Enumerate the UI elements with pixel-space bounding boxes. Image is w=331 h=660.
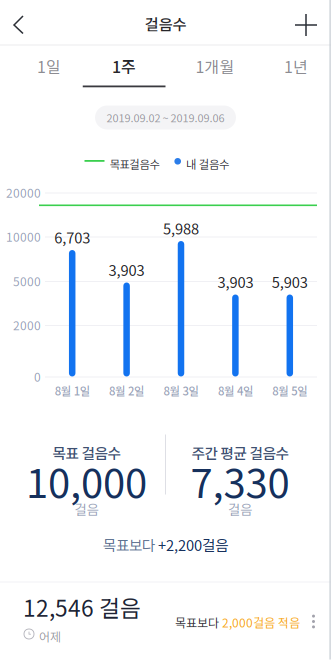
staticText: 목표걸음수	[109, 155, 159, 172]
staticText: 1년	[284, 54, 308, 78]
staticText: 8월 2일	[109, 382, 144, 399]
staticText: 7,330	[190, 451, 289, 509]
staticText: 목표보다	[103, 534, 158, 555]
staticText: 6,703	[54, 226, 90, 248]
staticText: 3,903	[217, 271, 253, 292]
staticText: 주간 평균 걸음수	[191, 442, 288, 463]
button[interactable]: 12,546 걸음	[0, 582, 331, 659]
staticText: 8월 5일	[272, 382, 307, 399]
staticText: 5,903	[272, 271, 308, 292]
button[interactable]: 1개월	[165, 44, 248, 87]
staticText: 1주	[112, 54, 136, 78]
staticText: +2,200걸음	[158, 534, 228, 555]
staticText: 목표 걸음수	[52, 442, 120, 463]
staticText: 2019.09.02 ~ 2019.09.06	[106, 110, 224, 125]
staticText: 10,000	[26, 451, 147, 509]
staticText: 5,988	[163, 217, 199, 239]
staticText: 1일	[37, 54, 61, 78]
staticText: 20000	[6, 184, 41, 201]
staticText: 1개월	[195, 54, 234, 78]
button[interactable]: 1주	[83, 44, 166, 87]
staticText: 8월 1일	[55, 382, 90, 399]
staticText: 내 걸음수	[186, 155, 229, 172]
staticText: 걸음	[228, 499, 252, 519]
staticText: 5000	[13, 272, 41, 290]
staticText: 걸음수	[144, 12, 186, 35]
staticText: 8월 4일	[218, 382, 253, 399]
button[interactable]: 뒤로	[0, 0, 44, 44]
button[interactable]: 추가	[284, 0, 328, 44]
staticText: 12,546 걸음	[23, 590, 141, 623]
staticText: 0	[34, 368, 41, 385]
staticText: 3,903	[109, 259, 145, 280]
staticText: 8월 3일	[163, 382, 198, 399]
staticText: 2,000걸음 적음	[222, 613, 300, 631]
staticText: 10000	[6, 228, 41, 245]
staticText: 걸음	[74, 499, 98, 519]
button[interactable]: 1년	[248, 44, 331, 87]
button[interactable]: 1일	[0, 44, 83, 87]
staticText: 어제	[39, 627, 61, 645]
staticText: 목표보다	[175, 613, 222, 631]
staticText: 2000	[13, 316, 41, 334]
button[interactable]: 2019.09.02 ~ 2019.09.06	[95, 105, 236, 129]
